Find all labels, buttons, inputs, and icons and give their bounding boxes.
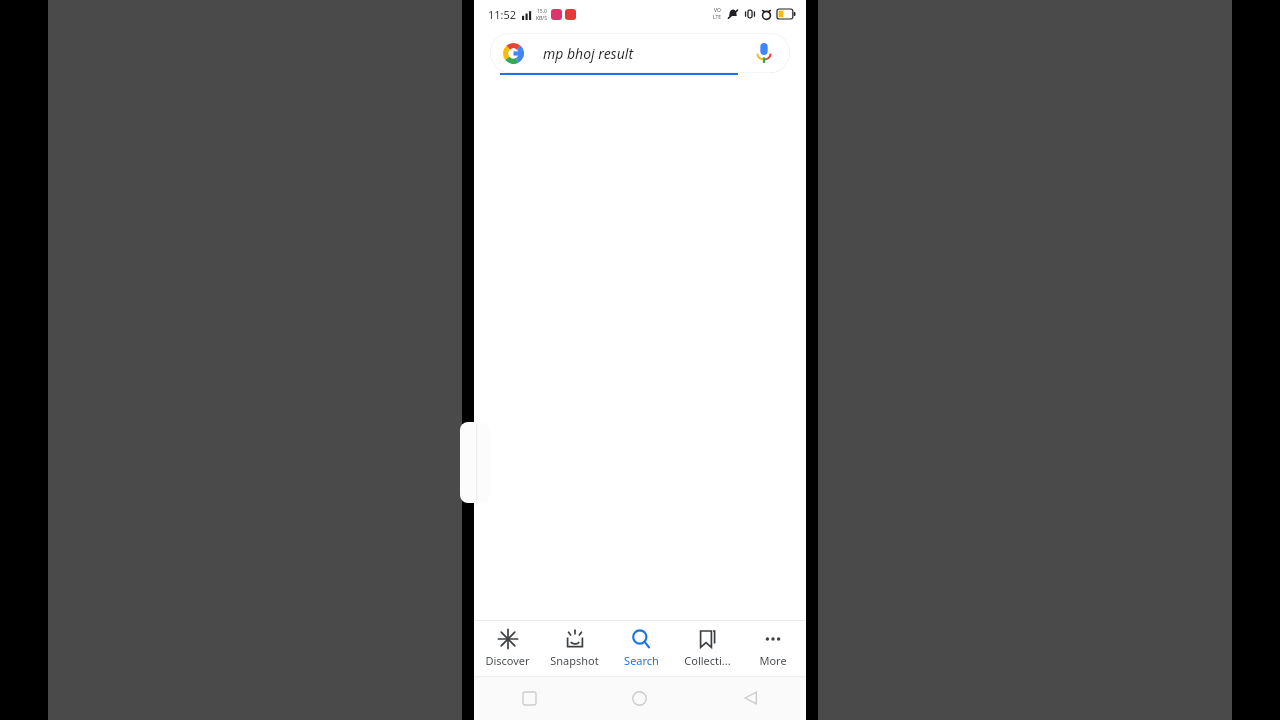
staticText: Collecti...: [684, 653, 731, 668]
staticText: More: [759, 653, 787, 668]
button[interactable]: Voice search: [751, 40, 777, 66]
staticText: Search: [624, 653, 659, 668]
button[interactable]: Back: [695, 676, 806, 720]
staticText: Snapshot: [550, 653, 599, 668]
staticText: LTE: [713, 14, 722, 21]
button[interactable]: Search: [608, 621, 674, 676]
button[interactable]: Recent apps: [474, 676, 584, 720]
button[interactable]: Collecti...: [674, 621, 740, 676]
staticText: mp bhoj result: [543, 44, 751, 63]
staticText: VO: [714, 7, 721, 14]
staticText: KB/S: [536, 15, 547, 22]
button[interactable]: mp bhoj result: [490, 33, 790, 73]
staticText: 11:52: [488, 7, 517, 22]
button[interactable]: Home: [584, 676, 695, 720]
button[interactable]: Snapshot: [541, 621, 608, 676]
staticText: 15.0: [537, 8, 547, 15]
staticText: Discover: [485, 653, 530, 668]
button[interactable]: More: [740, 621, 806, 676]
button[interactable]: Discover: [474, 621, 541, 676]
